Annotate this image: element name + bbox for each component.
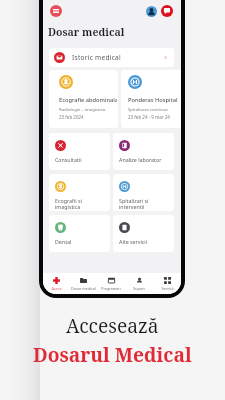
button[interactable]: Consultatii xyxy=(49,133,110,170)
button[interactable]: Programari xyxy=(97,273,125,294)
button[interactable]: Servicii xyxy=(153,273,181,294)
staticText: Accesează xyxy=(66,312,159,338)
staticText: Radiologie – imagistica xyxy=(59,106,106,112)
button[interactable]: Spitalizari si interventii xyxy=(113,174,174,211)
button[interactable]: Ecografii si imagistica xyxy=(49,174,110,211)
button[interactable]: Dental xyxy=(49,215,110,252)
staticText: 23 feb 2024 xyxy=(59,114,84,120)
staticText: Spitalizari si interventii xyxy=(119,197,149,211)
staticText: Servicii xyxy=(161,286,174,291)
staticText: Istoric medical xyxy=(72,53,122,62)
button[interactable]: Acasa xyxy=(43,273,70,294)
staticText: Spitalizare continua xyxy=(128,106,168,112)
button[interactable]: Suport xyxy=(125,273,153,294)
staticText: Suport xyxy=(133,286,145,291)
button[interactable]: Alte servicii xyxy=(113,215,174,252)
staticText: Acasa xyxy=(51,286,62,291)
staticText: Dosar medical xyxy=(71,286,96,291)
button[interactable]: Ecografie abdominala xyxy=(49,70,118,128)
staticText: Ecografii si imagistica xyxy=(55,197,82,211)
staticText: 23 feb 24 - 9 mar 24 xyxy=(128,114,170,120)
staticText: Ecografie abdominala xyxy=(59,96,117,104)
staticText: Programari xyxy=(101,286,121,291)
button[interactable]: Dosar medical xyxy=(70,273,97,294)
button[interactable]: Ponderas Hospital xyxy=(121,70,181,128)
staticText: Consultatii xyxy=(55,156,82,163)
staticText: Dental xyxy=(55,238,72,245)
staticText: Analize laborator xyxy=(119,156,162,163)
staticText: Ponderas Hospital xyxy=(128,96,178,104)
button[interactable]: Analize laborator xyxy=(113,133,174,170)
button[interactable]: Istoric medical xyxy=(49,48,174,67)
staticText: Dosar medical xyxy=(48,25,125,39)
button[interactable]: Open menu xyxy=(50,5,62,17)
button[interactable]: Profile xyxy=(146,6,157,17)
button[interactable]: Messages xyxy=(161,5,173,17)
staticText: Dosarul Medical xyxy=(33,341,192,367)
staticText: Alte servicii xyxy=(119,238,148,245)
